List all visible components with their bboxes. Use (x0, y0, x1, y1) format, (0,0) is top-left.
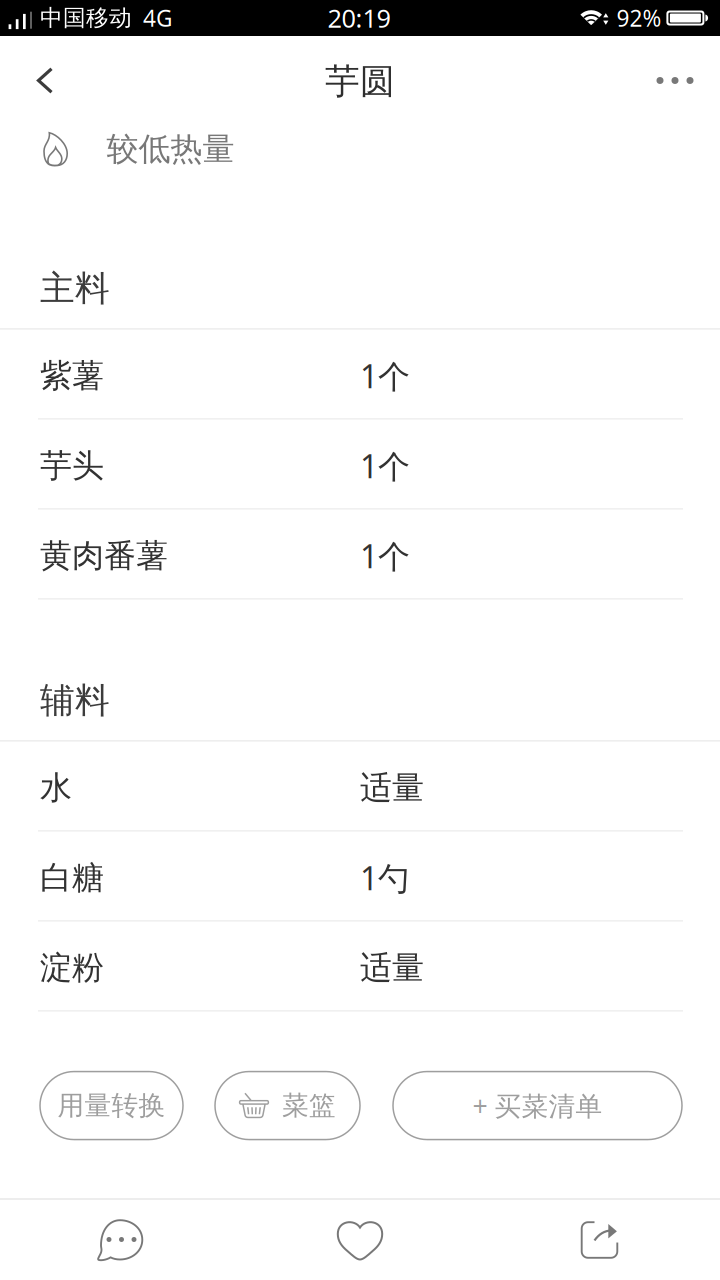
staticText: 紫薯 (40, 356, 104, 395)
staticText: 黄肉番薯 (40, 536, 168, 575)
button[interactable]: More options (626, 36, 720, 125)
staticText: 20:19 (327, 1, 390, 35)
staticText: 1个 (360, 445, 410, 487)
staticText: 中国移动 (40, 4, 132, 32)
staticText: 水 (40, 768, 72, 807)
button[interactable]: Share (480, 1200, 720, 1280)
staticText: 芋圆 (325, 60, 395, 103)
staticText: 淀粉 (40, 948, 104, 987)
staticText: 较低热量 (106, 129, 234, 169)
button[interactable]: Back (0, 36, 86, 125)
button[interactable]: + 买菜清单 (393, 1072, 682, 1140)
staticText: 辅料 (40, 679, 110, 722)
button[interactable]: 菜篮 (215, 1072, 360, 1140)
staticText: 适量 (360, 948, 424, 987)
button[interactable]: Comments (0, 1200, 240, 1280)
staticText: 92% (616, 3, 661, 33)
staticText: 4G (143, 3, 173, 33)
button[interactable]: Favorite (240, 1200, 480, 1280)
staticText: 菜篮 (282, 1089, 336, 1122)
button[interactable]: 用量转换 (40, 1072, 183, 1140)
staticText: + 买菜清单 (472, 1088, 602, 1123)
staticText: 白糖 (40, 858, 104, 897)
staticText: 1勺 (360, 857, 410, 899)
staticText: 芋头 (40, 446, 104, 485)
staticText: 用量转换 (57, 1089, 165, 1122)
staticText: 1个 (360, 535, 410, 577)
staticText: 适量 (360, 768, 424, 807)
staticText: 1个 (360, 355, 410, 397)
staticText: 主料 (40, 267, 110, 310)
